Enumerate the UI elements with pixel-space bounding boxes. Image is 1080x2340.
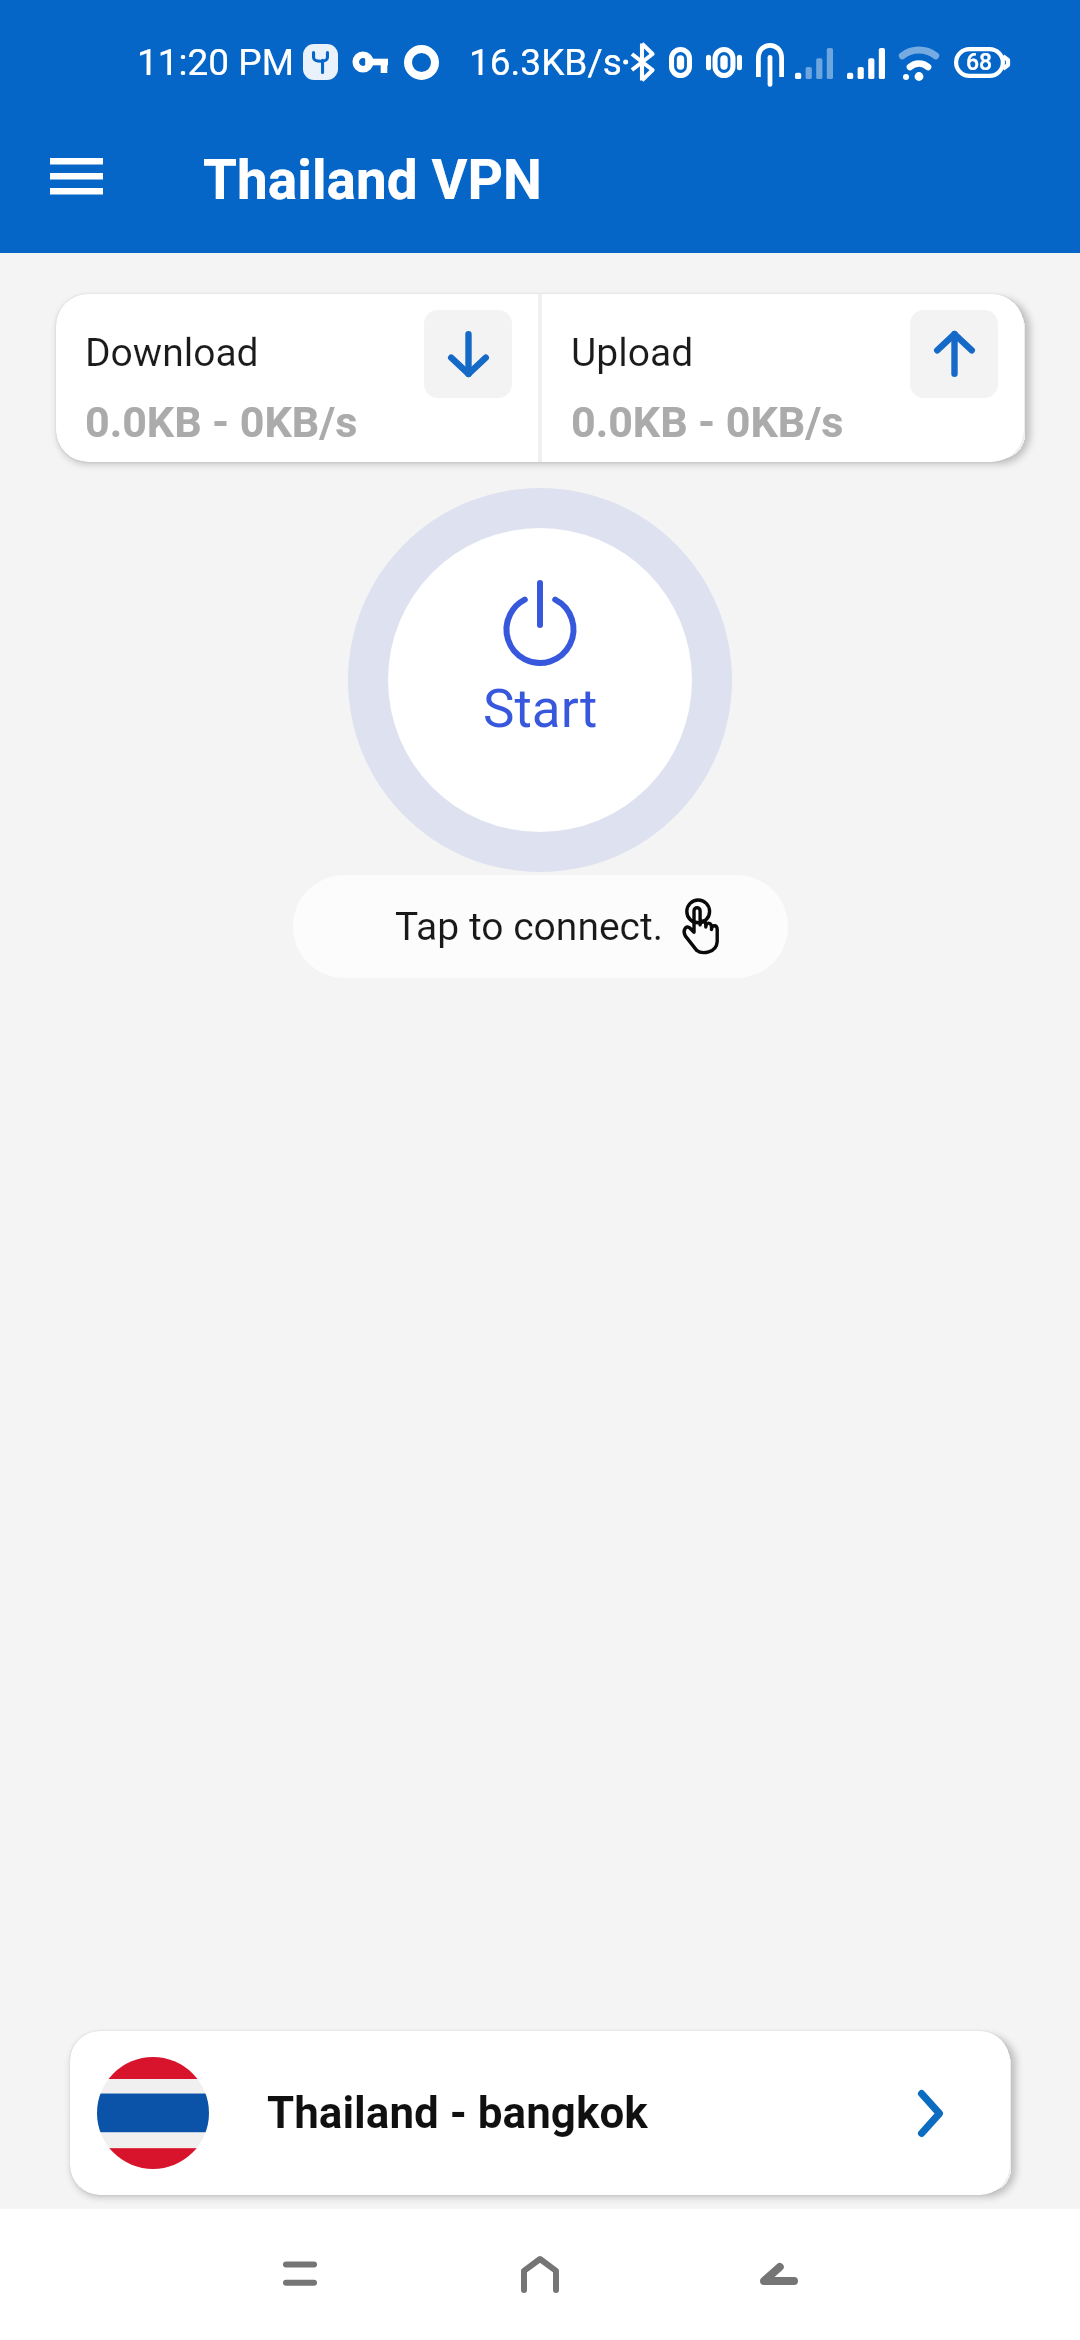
staticText: Download xyxy=(85,330,259,376)
button[interactable]: Tap to connect. xyxy=(293,875,788,978)
button[interactable]: Home xyxy=(480,2209,600,2339)
staticText: 0.0KB - 0KB/s xyxy=(571,397,844,447)
staticText: 11:20 PM xyxy=(137,41,294,84)
button[interactable]: Download xyxy=(56,294,538,462)
staticText: 16.3KB/s xyxy=(469,41,622,84)
staticText: 68 xyxy=(966,49,993,76)
button[interactable]: Recent apps xyxy=(240,2209,360,2339)
button[interactable]: Back xyxy=(719,2209,839,2339)
staticText: Thailand VPN xyxy=(203,148,542,212)
button[interactable]: Thailand - bangkok xyxy=(70,2031,1010,2195)
button[interactable]: Open navigation menu xyxy=(28,128,124,224)
button[interactable]: Upload xyxy=(542,294,1024,462)
button[interactable]: Start xyxy=(348,488,732,872)
staticText: Thailand - bangkok xyxy=(267,2087,648,2139)
staticText: Upload xyxy=(571,330,694,376)
staticText: 0.0KB - 0KB/s xyxy=(85,397,358,447)
staticText: Tap to connect. xyxy=(395,904,664,950)
staticText: Start xyxy=(483,678,598,740)
